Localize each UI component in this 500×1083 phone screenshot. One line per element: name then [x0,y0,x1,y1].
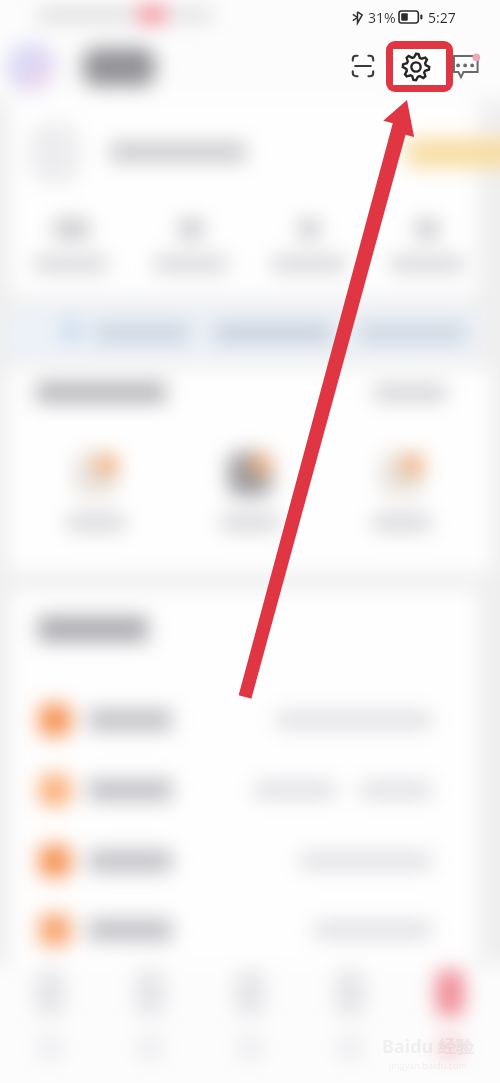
button[interactable]: Settings [386,41,453,92]
staticText: 5:27 [428,8,456,27]
staticText: jingyan.baidu.com [389,1059,467,1071]
button[interactable]: Scan [348,51,378,81]
button[interactable]: Messages [452,51,484,83]
staticText: 31% [368,8,396,27]
staticText: Baidu 经验 [382,1034,474,1059]
